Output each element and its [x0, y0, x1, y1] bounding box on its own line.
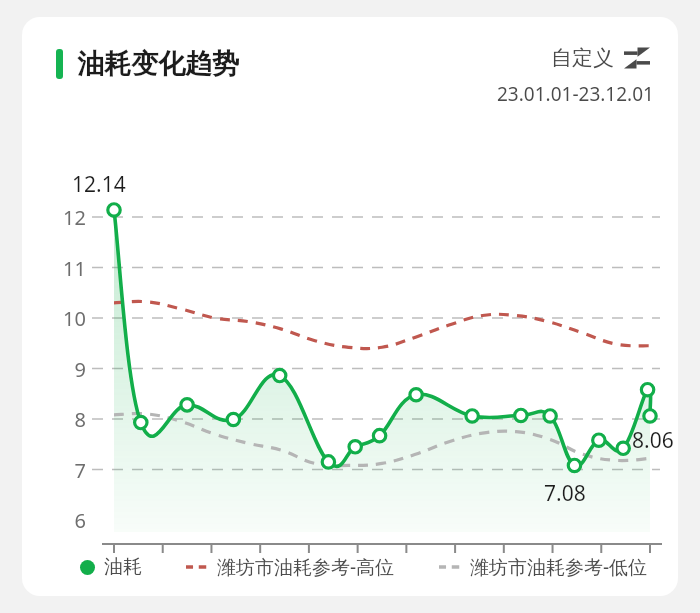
staticText: 8	[56, 406, 86, 433]
button[interactable]: 潍坊市油耗参考-高位	[186, 554, 395, 580]
staticText: 12	[56, 204, 86, 231]
staticText: 6	[56, 507, 86, 534]
staticText: 23.01.01-23.12.01	[497, 81, 654, 107]
staticText: 油耗变化趋势	[77, 47, 239, 81]
staticText: 7.08	[544, 479, 586, 508]
staticText: 潍坊市油耗参考-高位	[217, 554, 395, 580]
staticText: 潍坊市油耗参考-低位	[470, 554, 648, 580]
button[interactable]: 潍坊市油耗参考-低位	[439, 554, 648, 580]
button[interactable]: 自定义	[547, 41, 654, 75]
staticText: 11	[56, 255, 86, 282]
staticText: 自定义	[551, 45, 614, 71]
staticText: 12.14	[72, 170, 126, 199]
staticText: 7	[56, 457, 86, 484]
other: Switch chart	[624, 47, 650, 69]
staticText: 9	[56, 356, 86, 383]
staticText: 油耗	[104, 555, 142, 579]
button[interactable]: 油耗	[80, 555, 142, 579]
staticText: 10	[56, 305, 86, 332]
staticText: 8.06	[632, 426, 674, 455]
